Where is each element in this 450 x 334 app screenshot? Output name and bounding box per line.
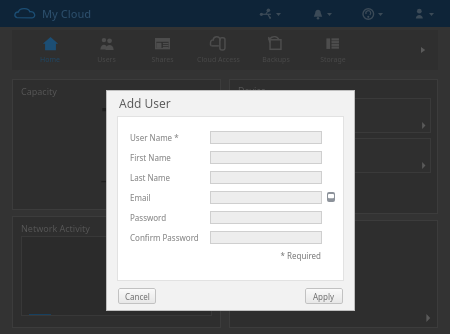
staticText: Device: [238, 84, 266, 96]
button[interactable]: [210, 131, 322, 144]
staticText: Shares: [151, 55, 174, 65]
button[interactable]: Diagnostics: [236, 98, 431, 133]
staticText: Apps: [238, 226, 260, 238]
staticText: Confirm Password: [130, 232, 210, 243]
staticText: Firmware: [242, 141, 278, 152]
button[interactable]: [210, 151, 322, 164]
staticText: First Name: [130, 152, 210, 163]
button[interactable]: Shares: [134, 27, 190, 73]
button[interactable]: Home: [22, 27, 78, 73]
staticText: Backups: [262, 55, 290, 65]
staticText: Cancel: [125, 291, 150, 302]
button[interactable]: Alerts: [309, 5, 334, 23]
staticText: Cloud Access: [197, 55, 240, 65]
staticText: TB: [101, 171, 132, 206]
button[interactable]: Firmware: [236, 138, 431, 173]
button[interactable]: [210, 211, 322, 224]
button[interactable]: USB: [258, 5, 283, 23]
staticText: Home: [40, 55, 60, 65]
staticText: Email: [130, 192, 210, 203]
staticText: 2.11.140: [257, 154, 293, 166]
staticText: 7: [99, 87, 135, 171]
button[interactable]: Email info: [327, 192, 335, 202]
button[interactable]: Storage: [304, 27, 361, 73]
staticText: * Required: [130, 250, 321, 261]
staticText: User Name *: [130, 132, 210, 143]
staticText: Network Activity: [21, 222, 90, 234]
button[interactable]: Account: [411, 5, 436, 23]
staticText: Healthy: [257, 114, 290, 126]
staticText: 4: [324, 251, 344, 297]
button[interactable]: [210, 171, 322, 184]
staticText: My Cloud: [42, 6, 92, 21]
button[interactable]: Apply: [305, 288, 343, 304]
button[interactable]: [210, 191, 322, 204]
staticText: Password: [130, 212, 210, 223]
button[interactable]: [210, 231, 322, 244]
staticText: Storage: [320, 55, 346, 65]
button[interactable]: Backups: [247, 27, 304, 73]
staticText: Add User: [119, 95, 171, 111]
staticText: Capacity: [21, 85, 57, 97]
staticText: Last Name: [130, 172, 210, 183]
staticText: Users: [97, 55, 116, 65]
button[interactable]: Cancel: [118, 288, 156, 304]
button[interactable]: Users: [78, 27, 134, 73]
button[interactable]: Cloud Access: [190, 27, 247, 73]
staticText: Apply: [313, 291, 335, 302]
button[interactable]: Help: [360, 5, 385, 23]
